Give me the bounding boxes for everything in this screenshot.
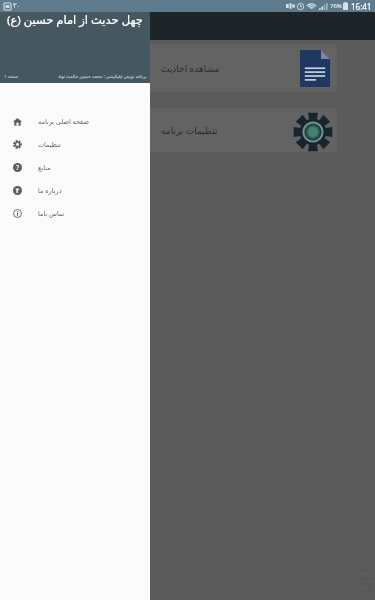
staticText: چهل حدیث از امام حسین (ع) xyxy=(7,12,143,28)
button[interactable]: تماس باما xyxy=(0,202,150,225)
staticText: مشاهده احادیث xyxy=(161,62,220,74)
button[interactable]: مشاهده احادیث xyxy=(8,44,337,92)
button[interactable]: ? xyxy=(0,156,150,179)
staticText: ? xyxy=(16,163,20,172)
staticText: صفحه اصلی برنامه xyxy=(38,117,89,126)
staticText: تماس باما xyxy=(38,209,65,218)
staticText: برنامه نویس اپلیکیشن : محمد حسین حکمت نه… xyxy=(58,73,147,79)
button[interactable]: تنظیمات xyxy=(0,133,150,156)
button[interactable]: تنظیمات برنامه xyxy=(8,108,337,152)
staticText: نسخه ۱ xyxy=(4,73,19,79)
staticText: تنظیمات برنامه xyxy=(161,124,218,136)
button[interactable]: درباره ما xyxy=(0,179,150,202)
staticText: منابع xyxy=(38,164,51,172)
button[interactable]: صفحه اصلی برنامه xyxy=(0,110,150,133)
staticText: درباره ما xyxy=(38,186,62,195)
staticText: تنظیمات xyxy=(38,141,61,149)
staticText: 76% xyxy=(330,2,342,10)
staticText: 16:41 xyxy=(351,1,372,12)
staticText: ۲۰ xyxy=(13,2,21,10)
